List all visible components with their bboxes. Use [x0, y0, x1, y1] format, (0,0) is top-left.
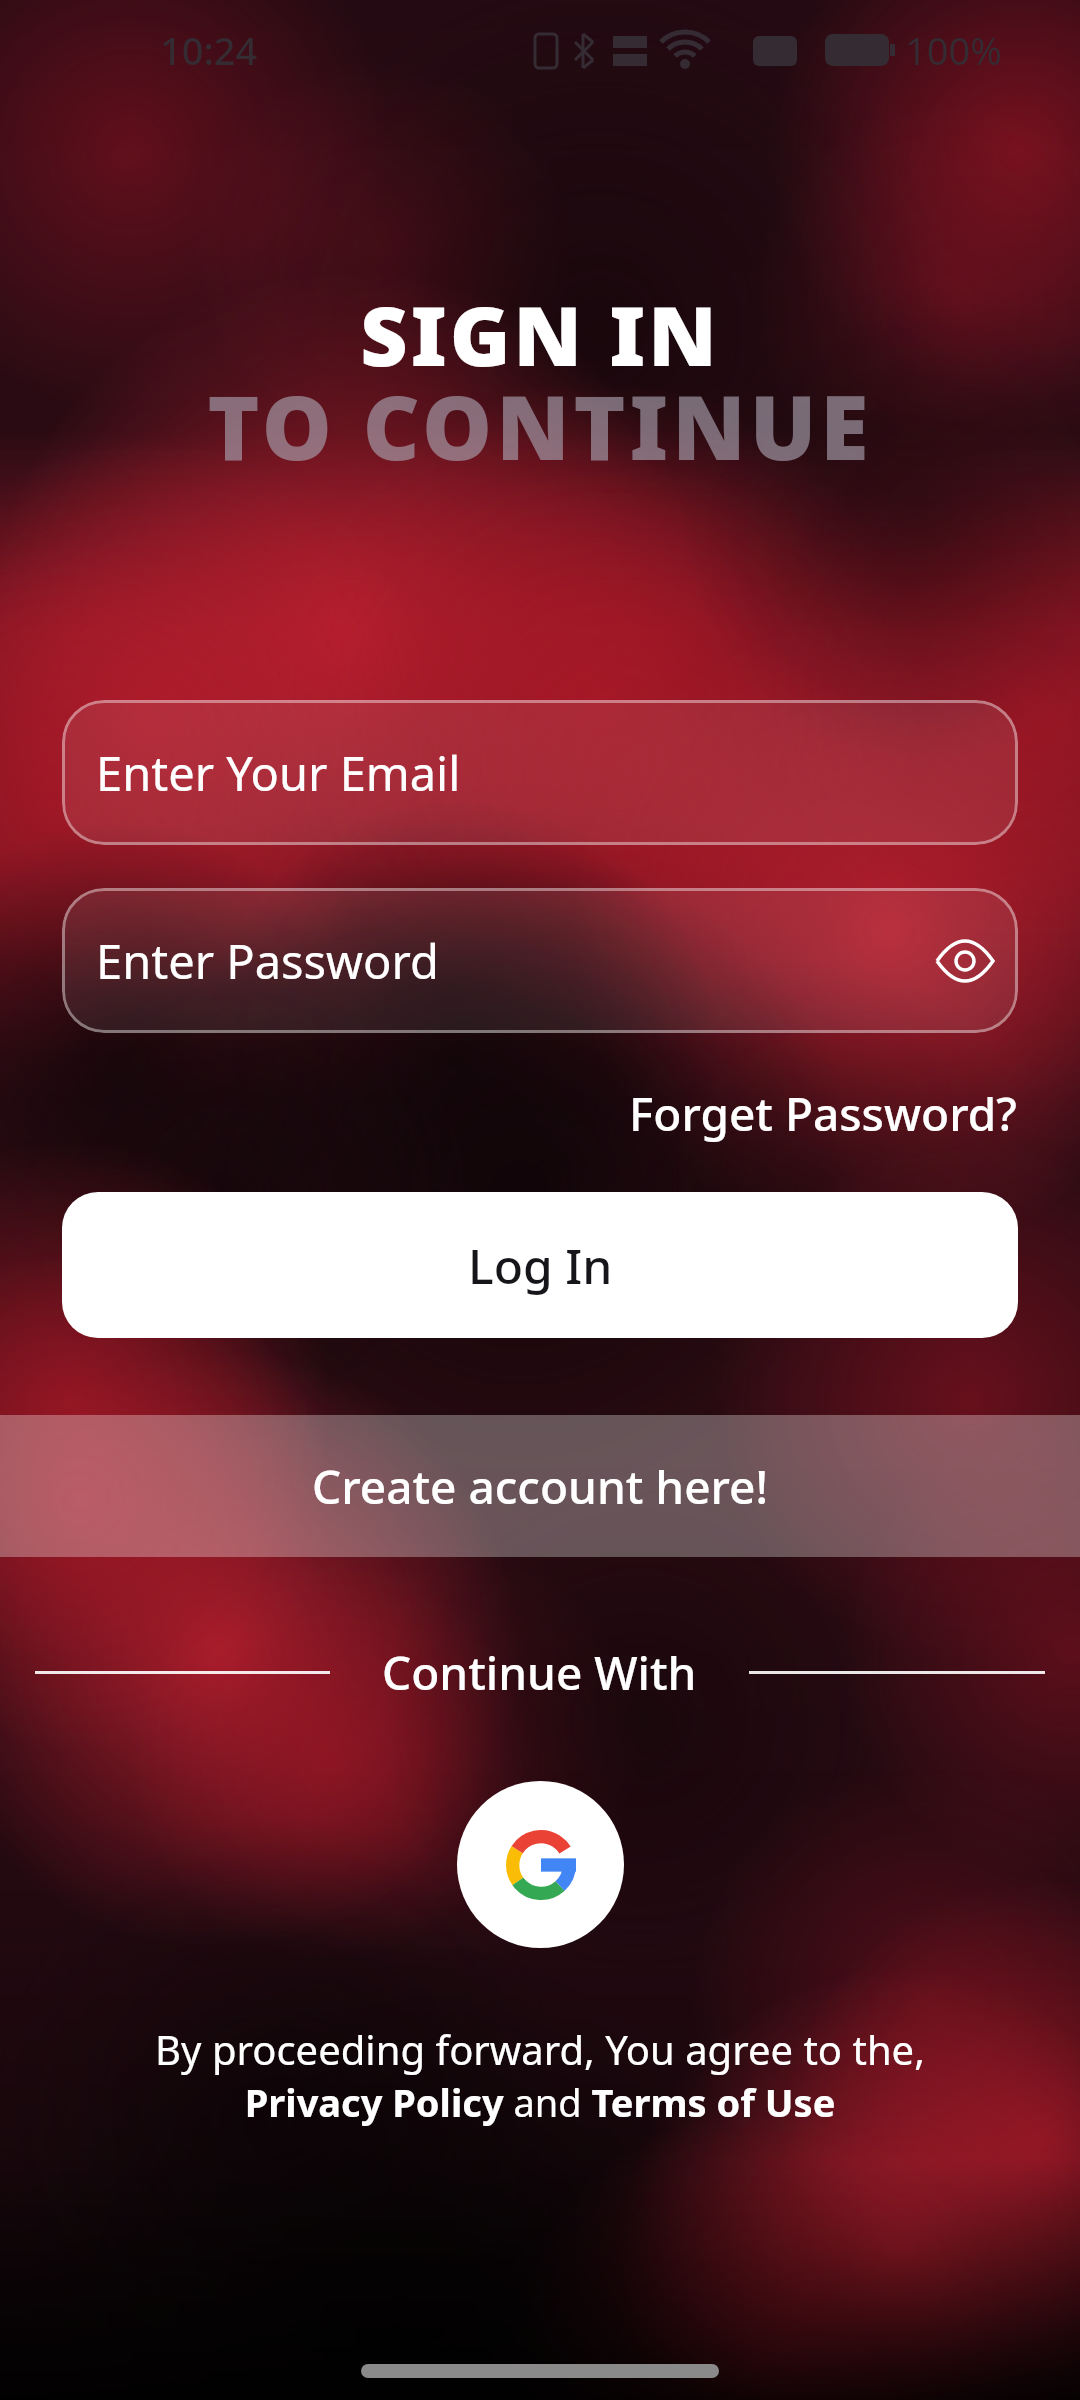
staticText: 100% [905, 24, 1002, 76]
staticText: 10:24 [160, 24, 258, 76]
staticText: By proceeding forward, You agree to the, [0, 2022, 1080, 2076]
button[interactable]: Forget Password? [629, 1082, 1017, 1145]
button[interactable]: Create account here! [0, 1415, 1080, 1557]
staticText: Continue With [382, 1641, 697, 1704]
staticText: Create account here! [312, 1455, 769, 1518]
button[interactable]: Enter Password [62, 888, 1018, 1033]
button[interactable]: Log In [62, 1192, 1018, 1338]
staticText: TO CONTINUE [0, 366, 1080, 486]
button[interactable]: Enter Your Email [62, 700, 1018, 845]
staticText: Enter Your Email [96, 741, 461, 805]
button[interactable]: Privacy Policy and Terms of Use [0, 2076, 1080, 2128]
staticText: Enter Password [96, 929, 439, 993]
staticText: Log In [468, 1233, 613, 1298]
staticText: SIGN IN [0, 278, 1080, 390]
button[interactable] [457, 1781, 624, 1948]
